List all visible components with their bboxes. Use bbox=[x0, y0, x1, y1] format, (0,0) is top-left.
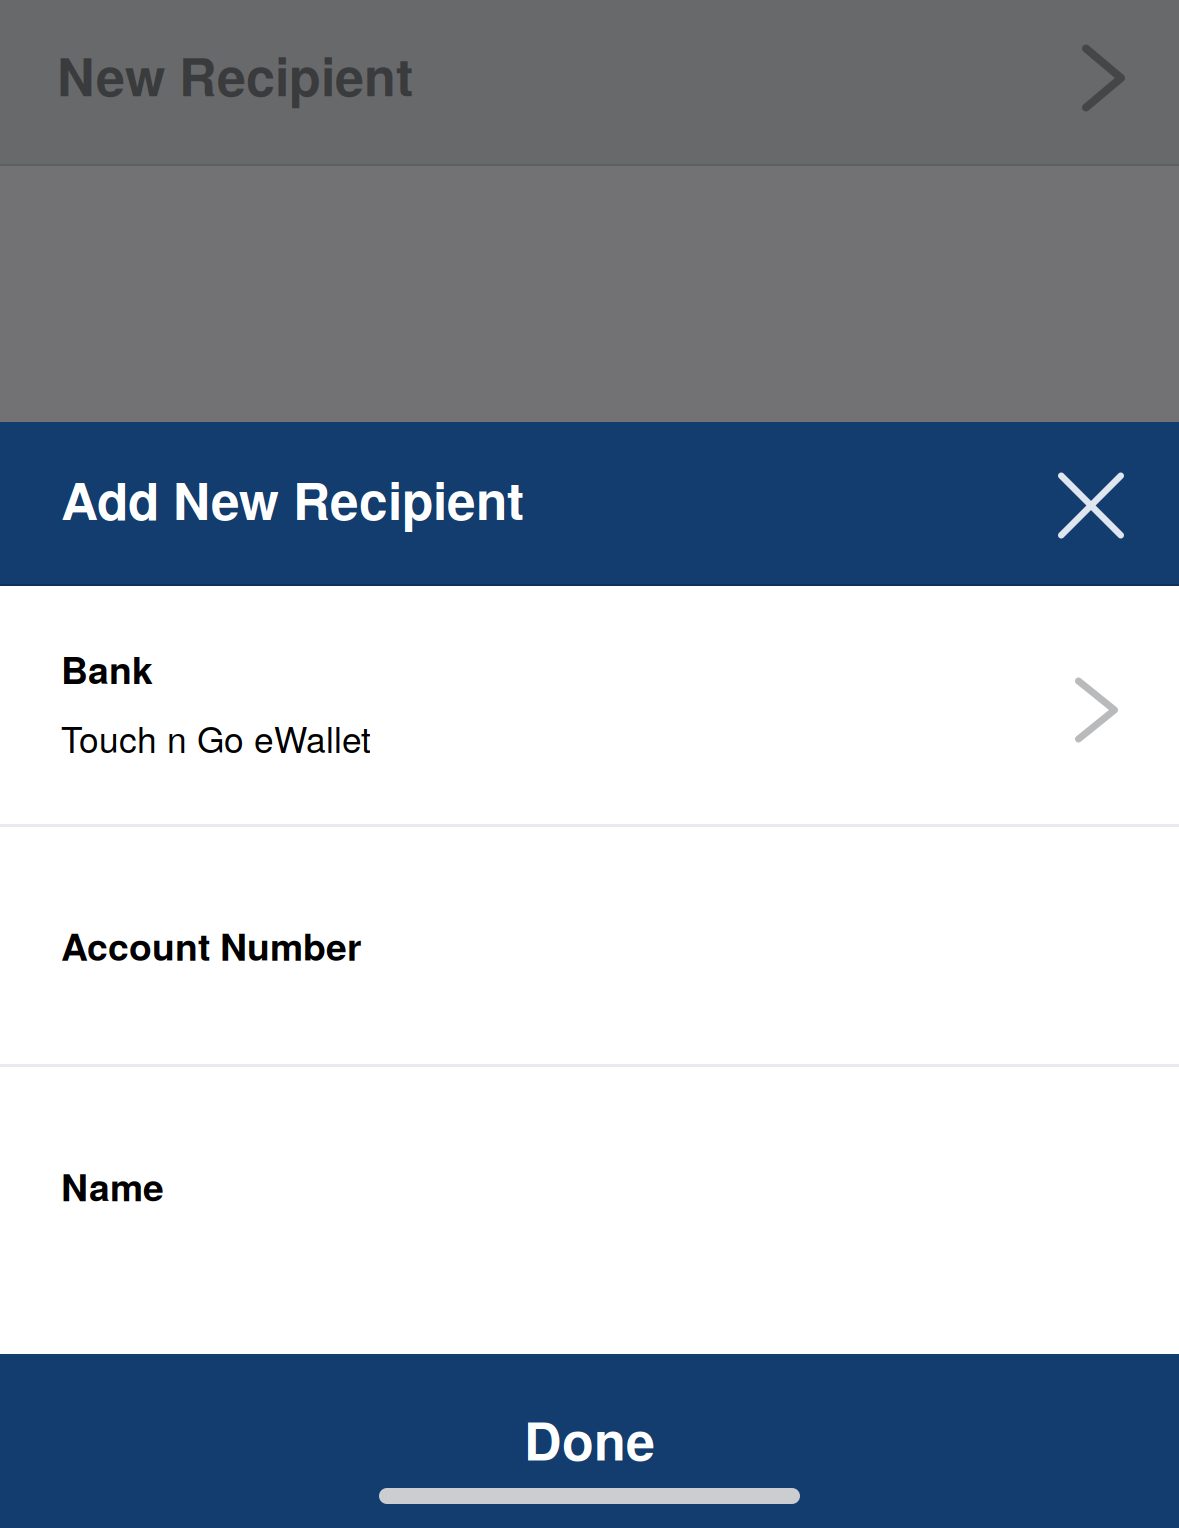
staticText: Name bbox=[61, 1159, 164, 1213]
staticText: Bank bbox=[61, 642, 153, 695]
button[interactable]: New Recipient bbox=[0, 0, 1179, 164]
button[interactable]: Done bbox=[0, 1354, 1179, 1528]
staticText: Add New Recipient bbox=[61, 462, 524, 536]
staticText: Done bbox=[524, 1402, 655, 1476]
staticText: Touch n Go eWallet bbox=[61, 712, 371, 763]
staticText: New Recipient bbox=[57, 38, 413, 112]
button[interactable]: Account Number bbox=[0, 827, 1179, 1064]
button[interactable]: Close bbox=[1035, 444, 1147, 561]
button[interactable]: Name bbox=[0, 1067, 1179, 1305]
staticText: Account Number bbox=[61, 919, 362, 972]
button[interactable]: Bank bbox=[0, 586, 1179, 824]
